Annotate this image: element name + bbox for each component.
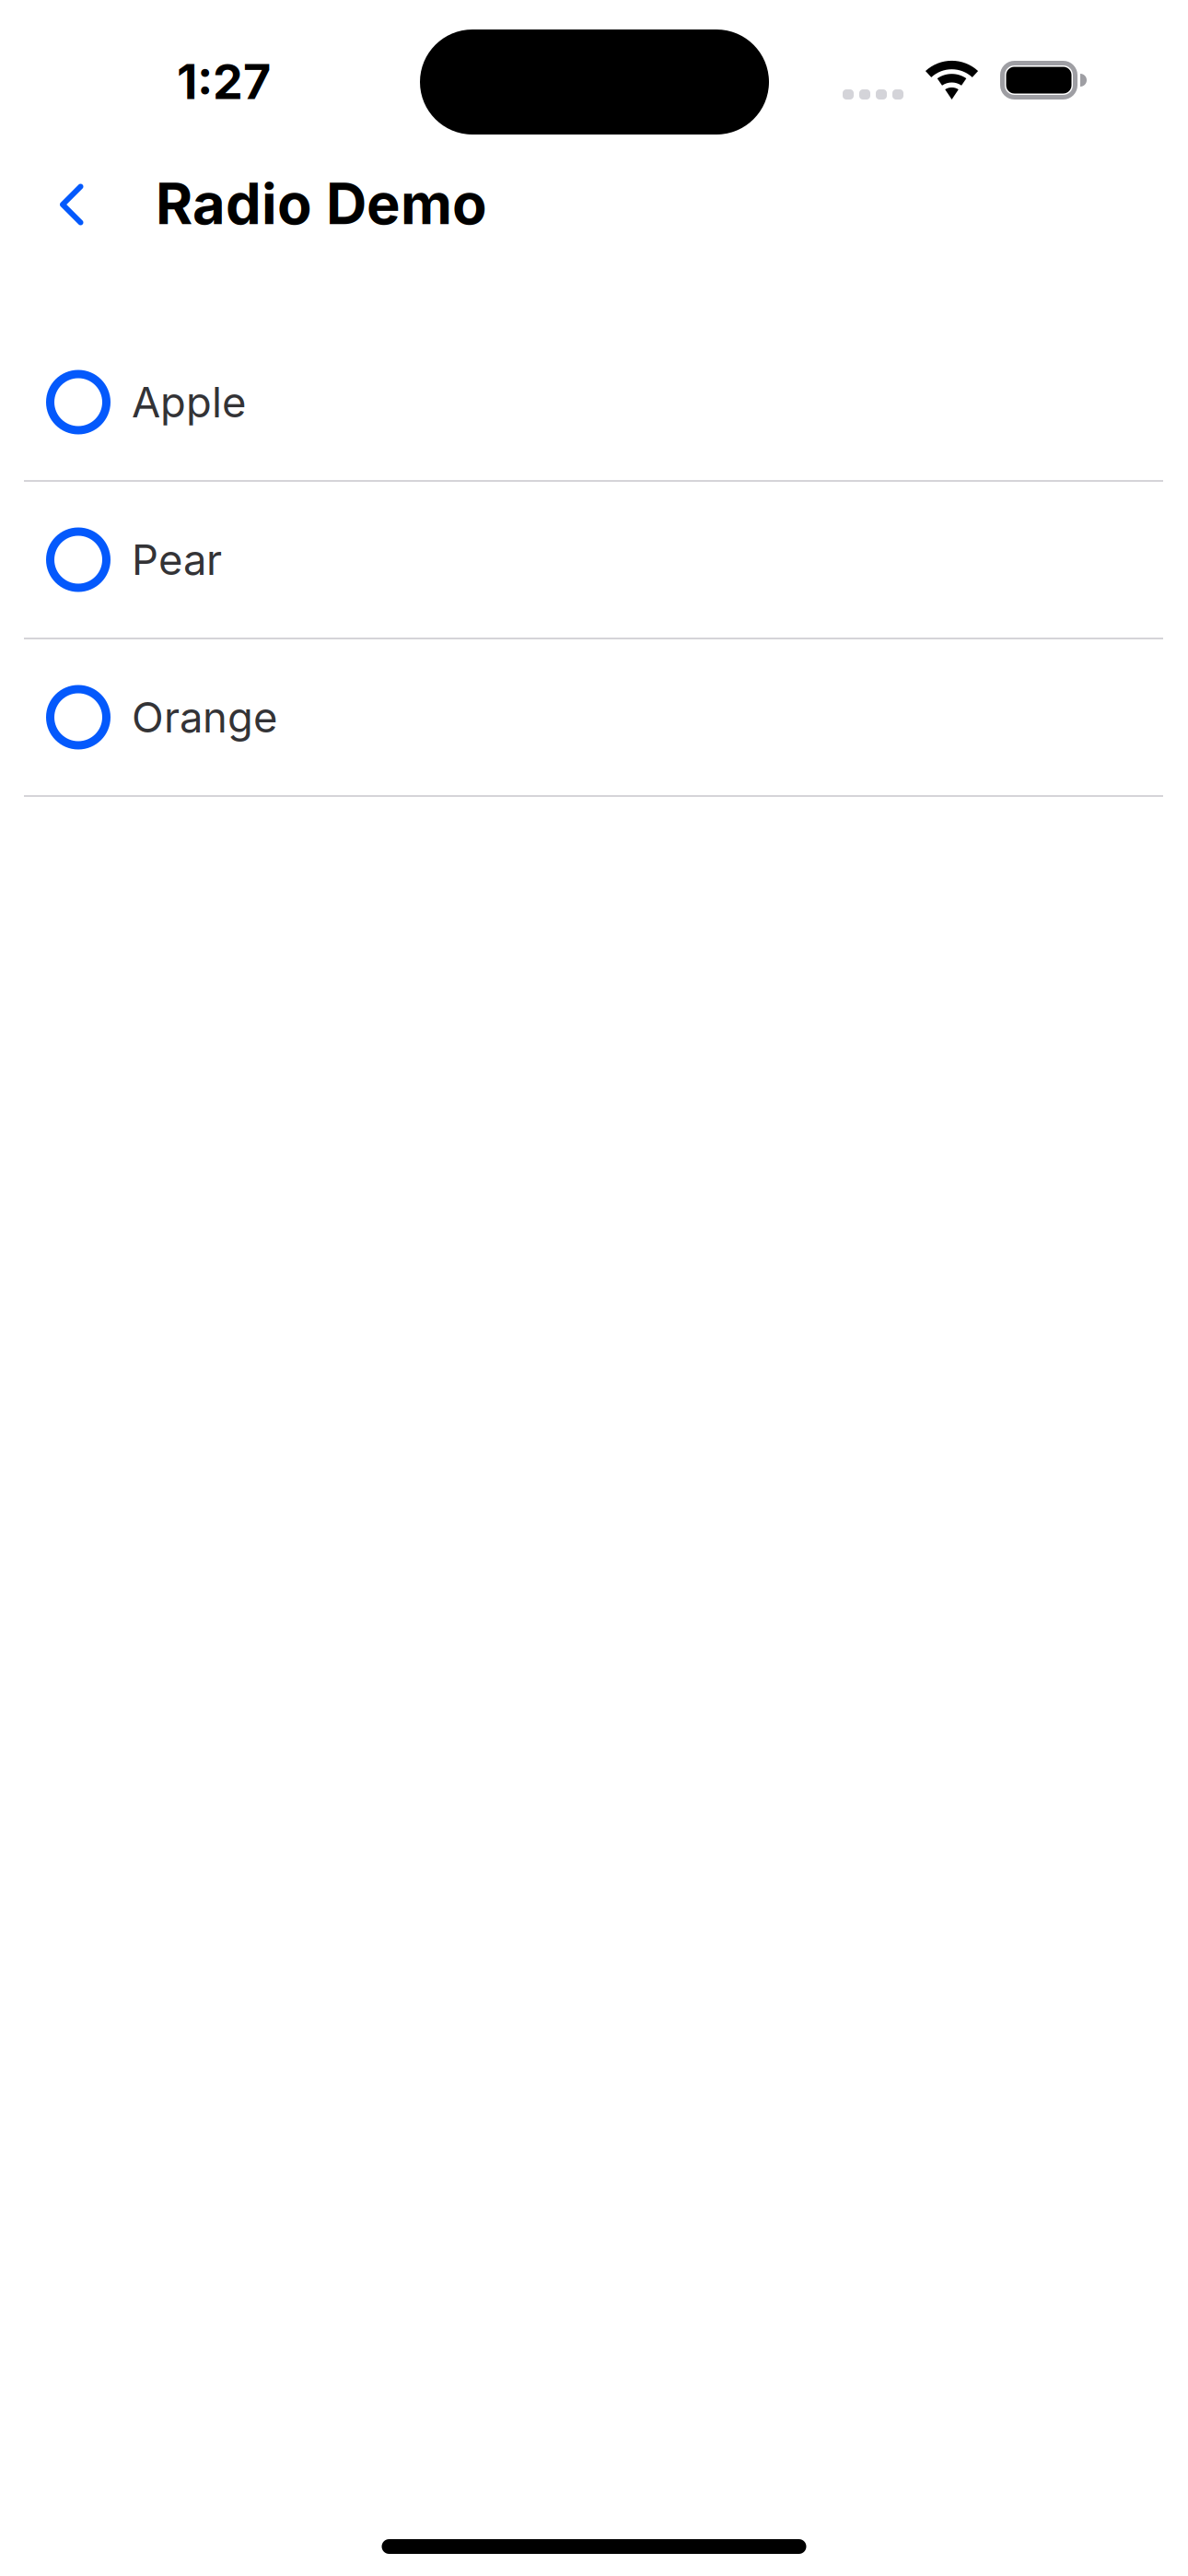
staticText: Apple <box>132 377 246 427</box>
staticText: 1:27 <box>177 53 271 110</box>
staticText: Orange <box>132 692 277 743</box>
button[interactable]: Apple <box>0 324 1188 480</box>
button[interactable]: Back <box>0 153 156 254</box>
staticText: Pear <box>132 534 222 585</box>
button[interactable]: Orange <box>0 639 1188 795</box>
staticText: Radio Demo <box>156 169 487 238</box>
button[interactable]: Pear <box>0 482 1188 638</box>
